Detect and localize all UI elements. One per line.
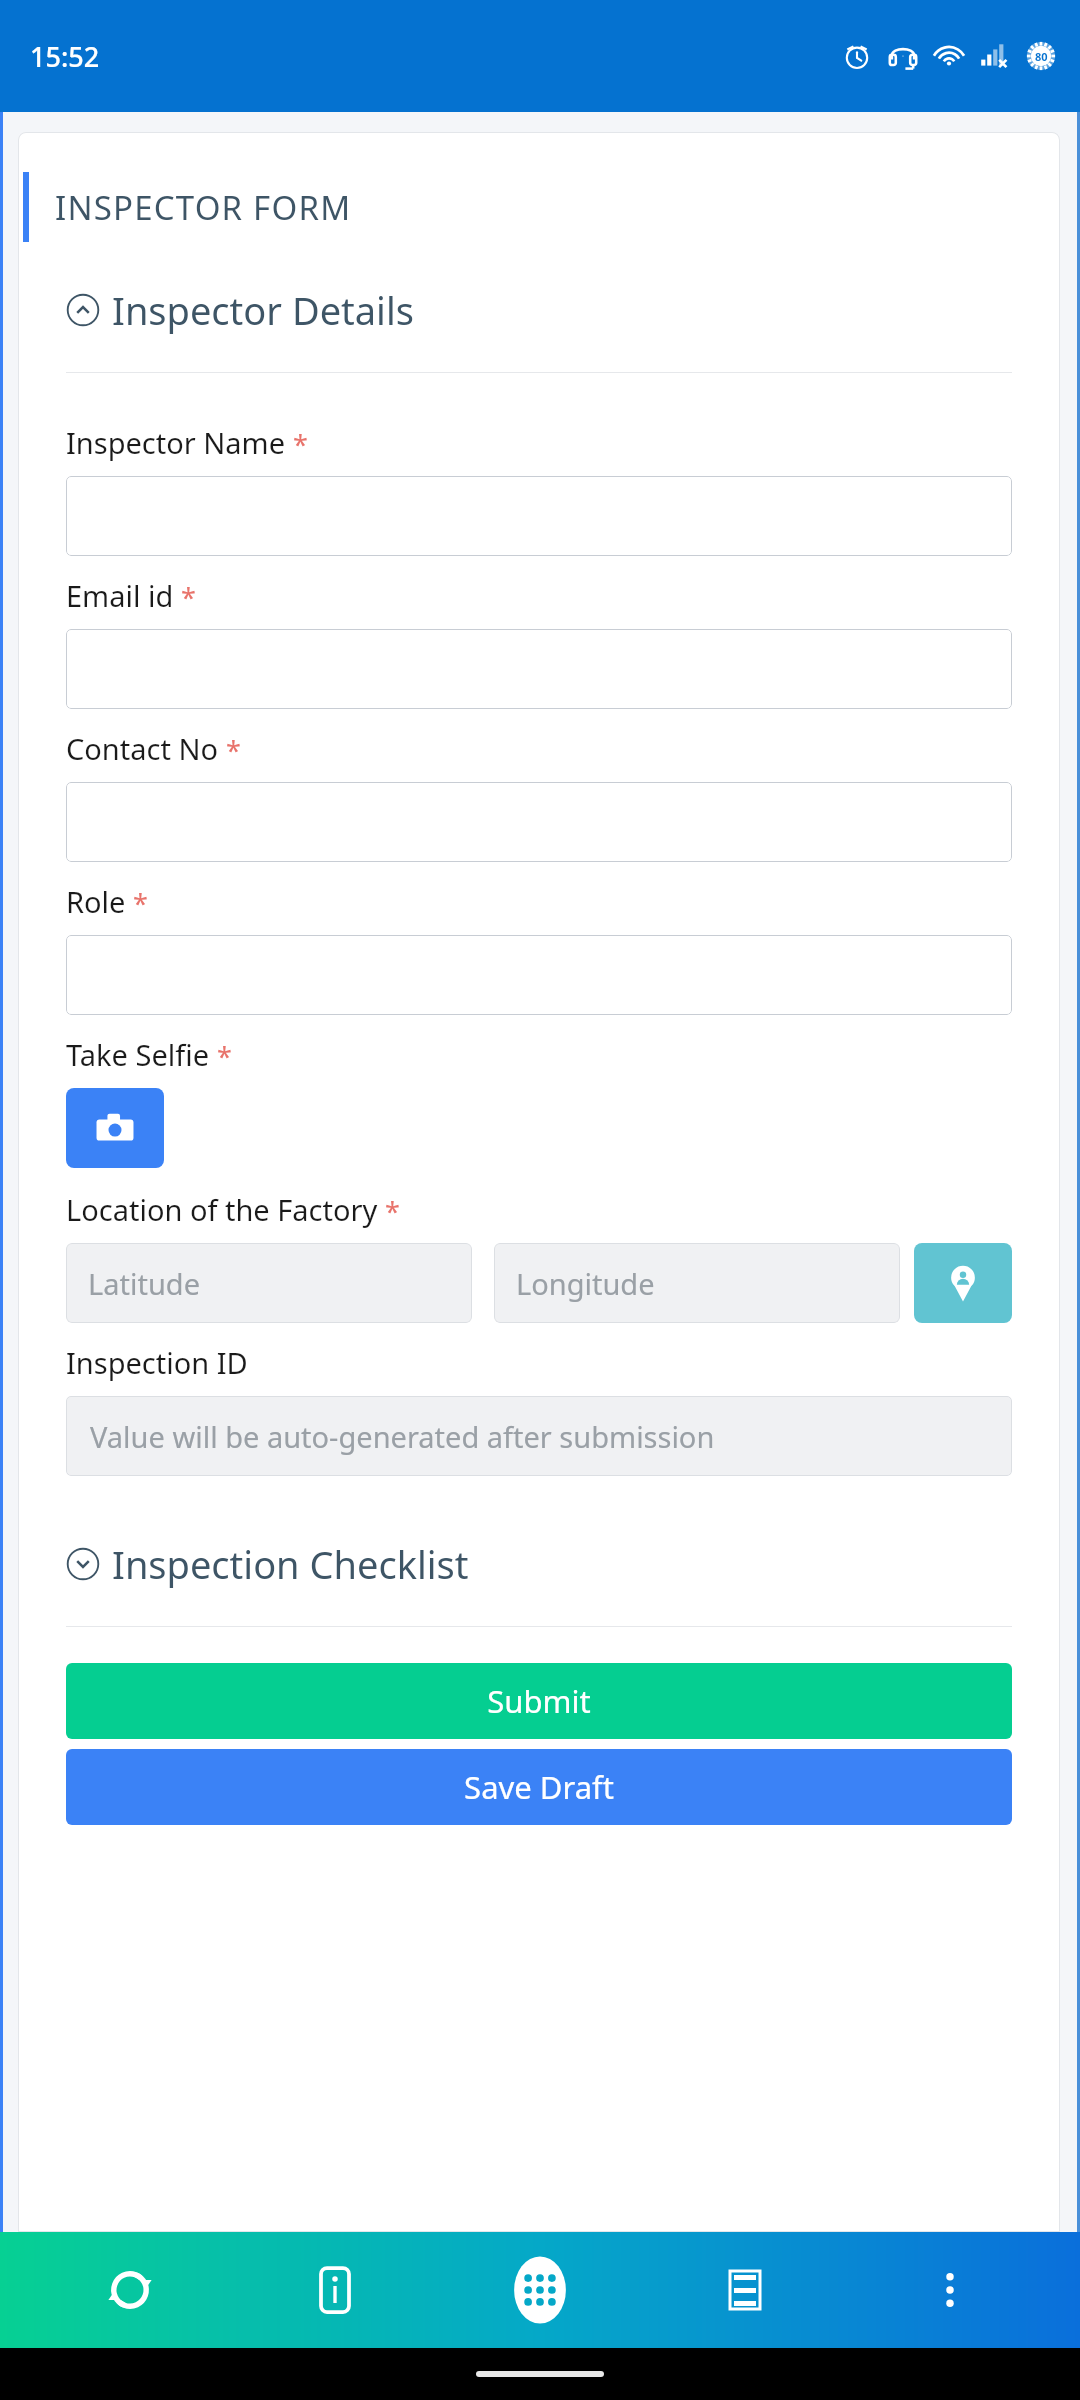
staticText: * (133, 885, 148, 922)
staticText: Inspector Name (66, 423, 286, 462)
staticText: Location of the Factory (66, 1190, 378, 1229)
staticText: * (217, 1038, 232, 1075)
button[interactable] (66, 935, 1012, 1015)
button[interactable]: Inspection Checklist (66, 1538, 1012, 1590)
staticText: Inspection ID (66, 1343, 248, 1382)
staticText: Inspector Details (112, 284, 414, 336)
staticText: Submit (487, 1680, 591, 1722)
button[interactable] (66, 782, 1012, 862)
staticText: Email id (66, 576, 174, 615)
button[interactable]: Info (260, 2232, 410, 2348)
button[interactable]: List (670, 2232, 820, 2348)
staticText: Value will be auto-generated after submi… (90, 1417, 715, 1456)
staticText: * (385, 1193, 400, 1230)
staticText: * (181, 579, 196, 616)
button[interactable]: Value will be auto-generated after submi… (66, 1396, 1012, 1476)
button[interactable]: Sync (55, 2232, 205, 2348)
staticText: Latitude (88, 1264, 200, 1303)
staticText: 15:52 (30, 38, 100, 75)
button[interactable] (66, 476, 1012, 556)
button[interactable]: Apps (465, 2232, 615, 2348)
staticText: * (293, 426, 308, 463)
button[interactable]: Get current location (914, 1243, 1012, 1323)
staticText: Role (66, 882, 126, 921)
staticText: Save Draft (464, 1766, 614, 1808)
button[interactable] (66, 629, 1012, 709)
staticText: Longitude (516, 1264, 655, 1303)
button[interactable]: Latitude (66, 1243, 472, 1323)
staticText: * (226, 732, 241, 769)
button[interactable]: Take Selfie (66, 1088, 164, 1168)
staticText: Contact No (66, 729, 219, 768)
button[interactable]: Save Draft (66, 1749, 1012, 1825)
staticText: 80 (1035, 49, 1048, 64)
button[interactable]: Longitude (494, 1243, 900, 1323)
staticText: Take Selfie (66, 1035, 210, 1074)
button[interactable]: Submit (66, 1663, 1012, 1739)
button[interactable]: Inspector Details (66, 284, 1012, 336)
staticText: INSPECTOR FORM (55, 185, 352, 230)
staticText: Inspection Checklist (112, 1538, 469, 1590)
button[interactable]: More options (875, 2232, 1025, 2348)
